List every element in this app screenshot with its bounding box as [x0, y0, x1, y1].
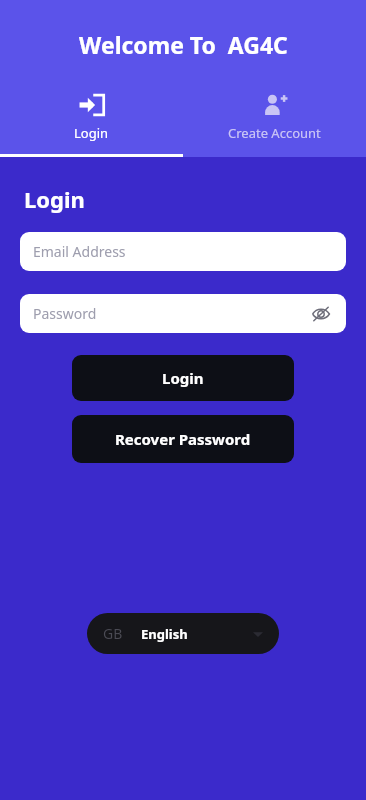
button[interactable]: Password: [20, 294, 346, 333]
staticText: Login: [24, 184, 85, 214]
button[interactable]: Show password: [309, 302, 333, 326]
staticText: Email Address: [33, 242, 126, 261]
button[interactable]: Login: [0, 80, 183, 154]
staticText: Password: [33, 304, 97, 323]
button[interactable]: Email Address: [20, 232, 346, 271]
button[interactable]: Create Account: [183, 80, 366, 154]
staticText: Login: [74, 124, 109, 142]
staticText: Create Account: [228, 124, 321, 142]
button[interactable]: Login: [72, 355, 294, 401]
staticText: Recover Password: [115, 429, 251, 449]
button[interactable]: Recover Password: [72, 415, 294, 463]
staticText: Login: [162, 368, 204, 388]
staticText: GB: [103, 624, 123, 643]
button[interactable]: GB: [87, 613, 279, 654]
staticText: Welcome To AG4C: [79, 29, 288, 60]
staticText: English: [141, 625, 188, 643]
